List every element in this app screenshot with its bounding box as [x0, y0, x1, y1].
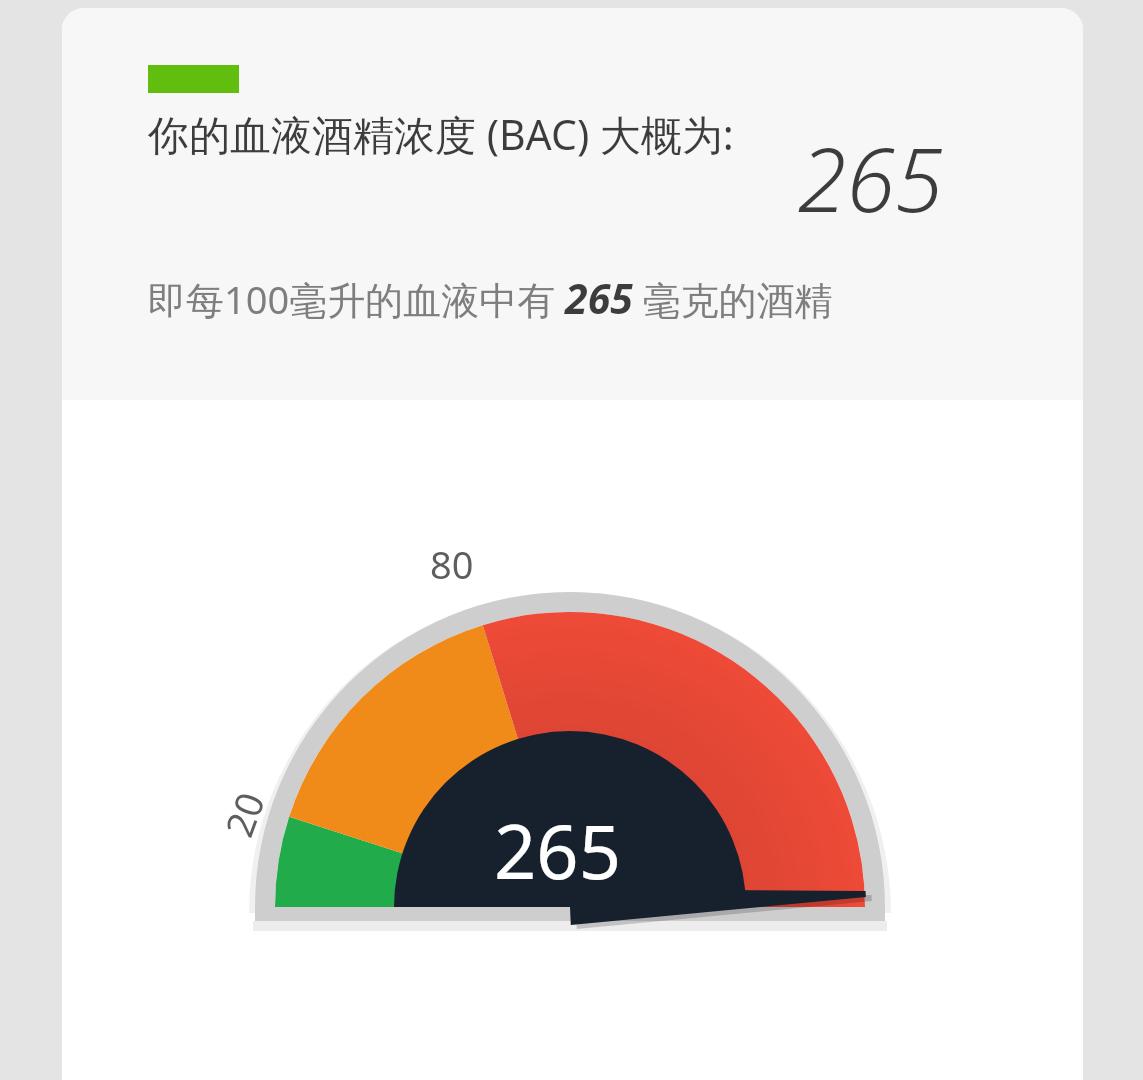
- other: Blood alcohol gauge, 265: [62, 400, 1083, 1080]
- staticText: 265: [798, 118, 944, 238]
- button[interactable]: 你的血液酒精浓度 (BAC) 大概为:: [62, 8, 1083, 1080]
- staticText: 即每100毫升的血液中有 265 毫克的酒精: [148, 270, 833, 326]
- staticText: 80: [430, 538, 474, 590]
- staticText: 265: [494, 800, 621, 901]
- staticText: 你的血液酒精浓度 (BAC) 大概为:: [148, 106, 788, 162]
- staticText: 20: [212, 784, 276, 843]
